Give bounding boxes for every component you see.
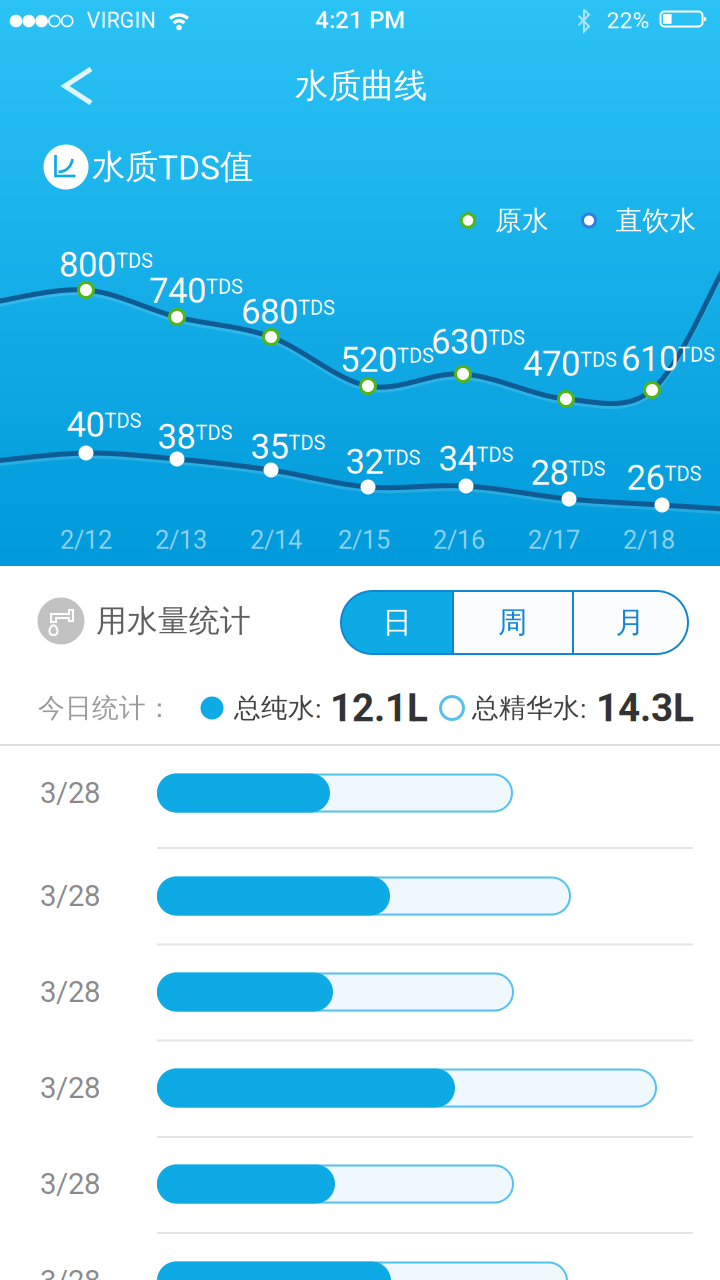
staticText: 32TDS — [345, 442, 420, 482]
staticText: 34TDS — [438, 439, 513, 479]
staticText: 28TDS — [530, 453, 605, 493]
staticText: 26TDS — [626, 458, 701, 498]
staticText: 月 — [615, 604, 644, 640]
staticText: 610TDS — [621, 339, 715, 379]
staticText: 水质TDS值 — [92, 146, 253, 187]
staticText: 2/15 — [338, 525, 390, 554]
staticText: 14.3L — [596, 686, 694, 730]
staticText: 水质曲线 — [295, 65, 427, 106]
staticText: VIRGIN — [86, 8, 155, 33]
staticText: 直饮水 — [615, 204, 696, 237]
staticText: 原水 — [495, 204, 549, 237]
staticText: 40TDS — [66, 405, 141, 445]
staticText: 日 — [382, 604, 411, 640]
staticText: 3/28 — [40, 1071, 100, 1105]
staticText: 22% — [606, 8, 649, 33]
staticText: 用水量统计 — [96, 602, 251, 640]
staticText: 2/16 — [433, 525, 485, 554]
button[interactable]: 周 — [452, 591, 572, 654]
staticText: 3/28 — [40, 879, 100, 913]
staticText: 4:21 PM — [315, 6, 405, 34]
staticText: 周 — [498, 604, 527, 640]
staticText: 3/28 — [40, 1167, 100, 1201]
staticText: 520TDS — [340, 340, 434, 380]
staticText: 35TDS — [250, 427, 325, 467]
staticText: 3/28 — [40, 1264, 100, 1280]
staticText: 今日统计： — [38, 692, 173, 724]
staticText: 800TDS — [59, 245, 153, 285]
staticText: 2/14 — [250, 525, 302, 554]
button[interactable]: 日 — [341, 591, 453, 654]
staticText: 总纯水: — [234, 692, 321, 724]
button[interactable]: Back — [57, 56, 117, 116]
staticText: 630TDS — [431, 322, 525, 362]
staticText: 2/17 — [528, 525, 580, 554]
staticText: 2/12 — [60, 525, 112, 554]
staticText: 470TDS — [523, 344, 617, 384]
staticText: 38TDS — [157, 417, 232, 457]
staticText: 12.1L — [330, 686, 428, 730]
staticText: 总精华水: — [472, 692, 586, 724]
staticText: 3/28 — [40, 776, 100, 810]
staticText: 3/28 — [40, 975, 100, 1009]
staticText: 2/13 — [155, 525, 207, 554]
staticText: 740TDS — [149, 271, 243, 311]
staticText: 2/18 — [623, 525, 675, 554]
button[interactable]: 月 — [573, 591, 687, 654]
staticText: 680TDS — [241, 292, 335, 332]
